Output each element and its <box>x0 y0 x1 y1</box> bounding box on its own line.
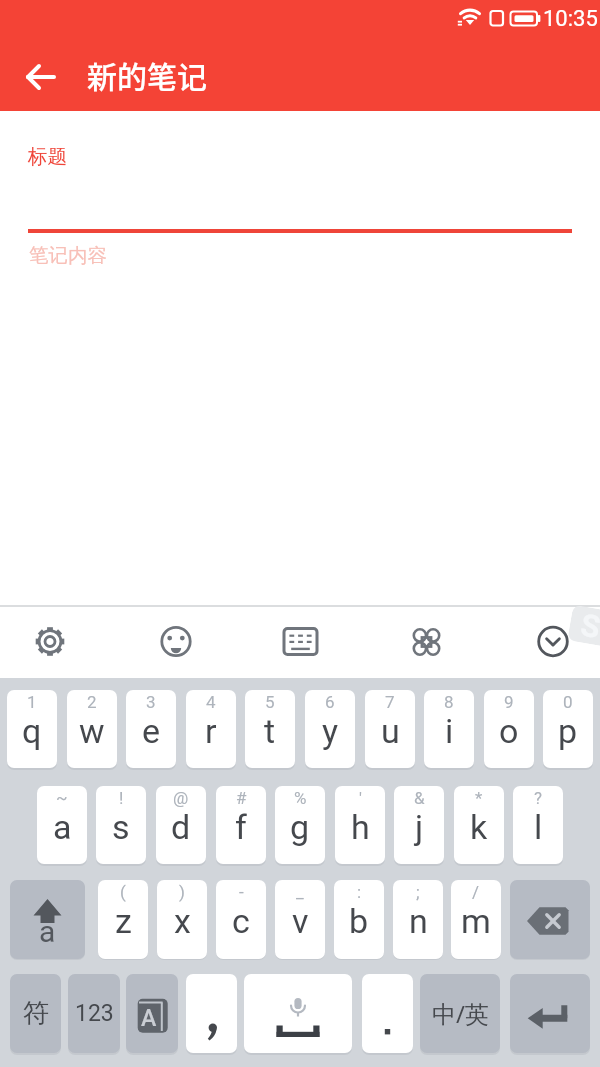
button[interactable] <box>529 617 577 665</box>
button[interactable]: 1 <box>7 690 57 768</box>
staticText: m <box>461 901 491 941</box>
staticText: j <box>415 807 424 847</box>
button[interactable] <box>276 617 324 665</box>
staticText: ? <box>534 788 543 808</box>
button[interactable]: A <box>126 974 178 1053</box>
staticText: i <box>445 711 454 751</box>
staticText: o <box>499 711 519 751</box>
button[interactable]: 符 <box>10 974 61 1053</box>
staticText: 123 <box>75 1000 114 1027</box>
button[interactable] <box>362 974 413 1053</box>
staticText: 9 <box>504 692 514 712</box>
button[interactable]: @ <box>156 786 206 864</box>
staticText: 3 <box>146 692 156 712</box>
staticText: n <box>409 901 428 941</box>
button[interactable] <box>510 974 590 1053</box>
button[interactable]: : <box>334 880 384 959</box>
staticText: % <box>294 788 307 808</box>
staticText: r <box>205 711 217 751</box>
button[interactable]: 5 <box>245 690 295 768</box>
button[interactable]: / <box>451 880 501 959</box>
staticText: 0 <box>563 692 573 712</box>
staticText: v <box>292 901 309 941</box>
staticText: 10:35 <box>543 6 598 32</box>
button[interactable] <box>402 617 450 665</box>
button[interactable] <box>186 974 237 1053</box>
staticText: 符 <box>23 997 49 1030</box>
staticText: u <box>381 711 400 751</box>
staticText: 5 <box>265 692 275 712</box>
button[interactable]: 9 <box>484 690 534 768</box>
staticText: # <box>236 788 247 808</box>
button[interactable]: ? <box>513 786 563 864</box>
button[interactable]: 7 <box>365 690 415 768</box>
staticText: l <box>534 807 543 847</box>
button[interactable]: * <box>454 786 504 864</box>
staticText: 笔记内容 <box>29 243 107 268</box>
staticText: / <box>472 882 480 902</box>
button[interactable]: ' <box>335 786 385 864</box>
button[interactable]: 4 <box>186 690 236 768</box>
staticText: ) <box>179 882 185 902</box>
staticText: g <box>290 807 310 847</box>
staticText: a <box>39 914 56 949</box>
button[interactable]: 中/英 <box>420 974 500 1053</box>
staticText: - <box>239 882 244 902</box>
staticText: 新的笔记 <box>87 53 207 96</box>
button[interactable]: ( <box>98 880 148 959</box>
button[interactable] <box>510 880 590 959</box>
button[interactable]: 6 <box>305 690 355 768</box>
staticText: ( <box>120 882 126 902</box>
staticText: 7 <box>385 692 395 712</box>
staticText: 2 <box>87 692 97 712</box>
button[interactable]: a <box>10 880 85 959</box>
staticText: h <box>351 807 370 847</box>
button[interactable] <box>244 974 352 1053</box>
staticText: p <box>558 711 578 751</box>
staticText: 8 <box>444 692 454 712</box>
staticText: q <box>22 711 42 751</box>
staticText: & <box>414 788 425 808</box>
staticText: ! <box>119 788 124 808</box>
button[interactable]: & <box>394 786 444 864</box>
button[interactable]: - <box>216 880 266 959</box>
button[interactable]: ; <box>393 880 443 959</box>
button[interactable]: ! <box>96 786 146 864</box>
button[interactable]: 3 <box>126 690 176 768</box>
staticText: 4 <box>206 692 216 712</box>
staticText: : <box>357 882 362 902</box>
staticText: A <box>141 1005 157 1032</box>
staticText: s <box>112 807 130 847</box>
staticText: ' <box>359 788 362 808</box>
staticText: 标题 <box>28 144 67 169</box>
staticText: x <box>174 901 191 941</box>
staticText: w <box>79 711 105 751</box>
button[interactable]: % <box>275 786 325 864</box>
button[interactable]: 123 <box>68 974 120 1053</box>
staticText: @ <box>173 788 189 808</box>
staticText: d <box>171 807 191 847</box>
button[interactable] <box>152 617 200 665</box>
staticText: z <box>115 901 132 941</box>
staticText: * <box>475 788 483 808</box>
button[interactable]: 2 <box>67 690 117 768</box>
staticText: c <box>232 901 250 941</box>
staticText: f <box>235 807 247 847</box>
staticText: 6 <box>325 692 335 712</box>
button[interactable]: _ <box>275 880 325 959</box>
staticText: 中/英 <box>432 997 489 1030</box>
button[interactable]: ~ <box>37 786 87 864</box>
button[interactable] <box>17 53 65 101</box>
staticText: a <box>53 807 72 847</box>
button[interactable]: # <box>216 786 266 864</box>
staticText: ; <box>416 882 420 902</box>
button[interactable]: ) <box>157 880 207 959</box>
staticText: _ <box>296 882 304 902</box>
button[interactable] <box>26 617 74 665</box>
button[interactable]: 8 <box>424 690 474 768</box>
staticText: 1 <box>27 692 37 712</box>
staticText: ~ <box>56 788 68 808</box>
button[interactable]: 0 <box>543 690 593 768</box>
staticText: k <box>470 807 488 847</box>
staticText: S <box>578 606 600 645</box>
